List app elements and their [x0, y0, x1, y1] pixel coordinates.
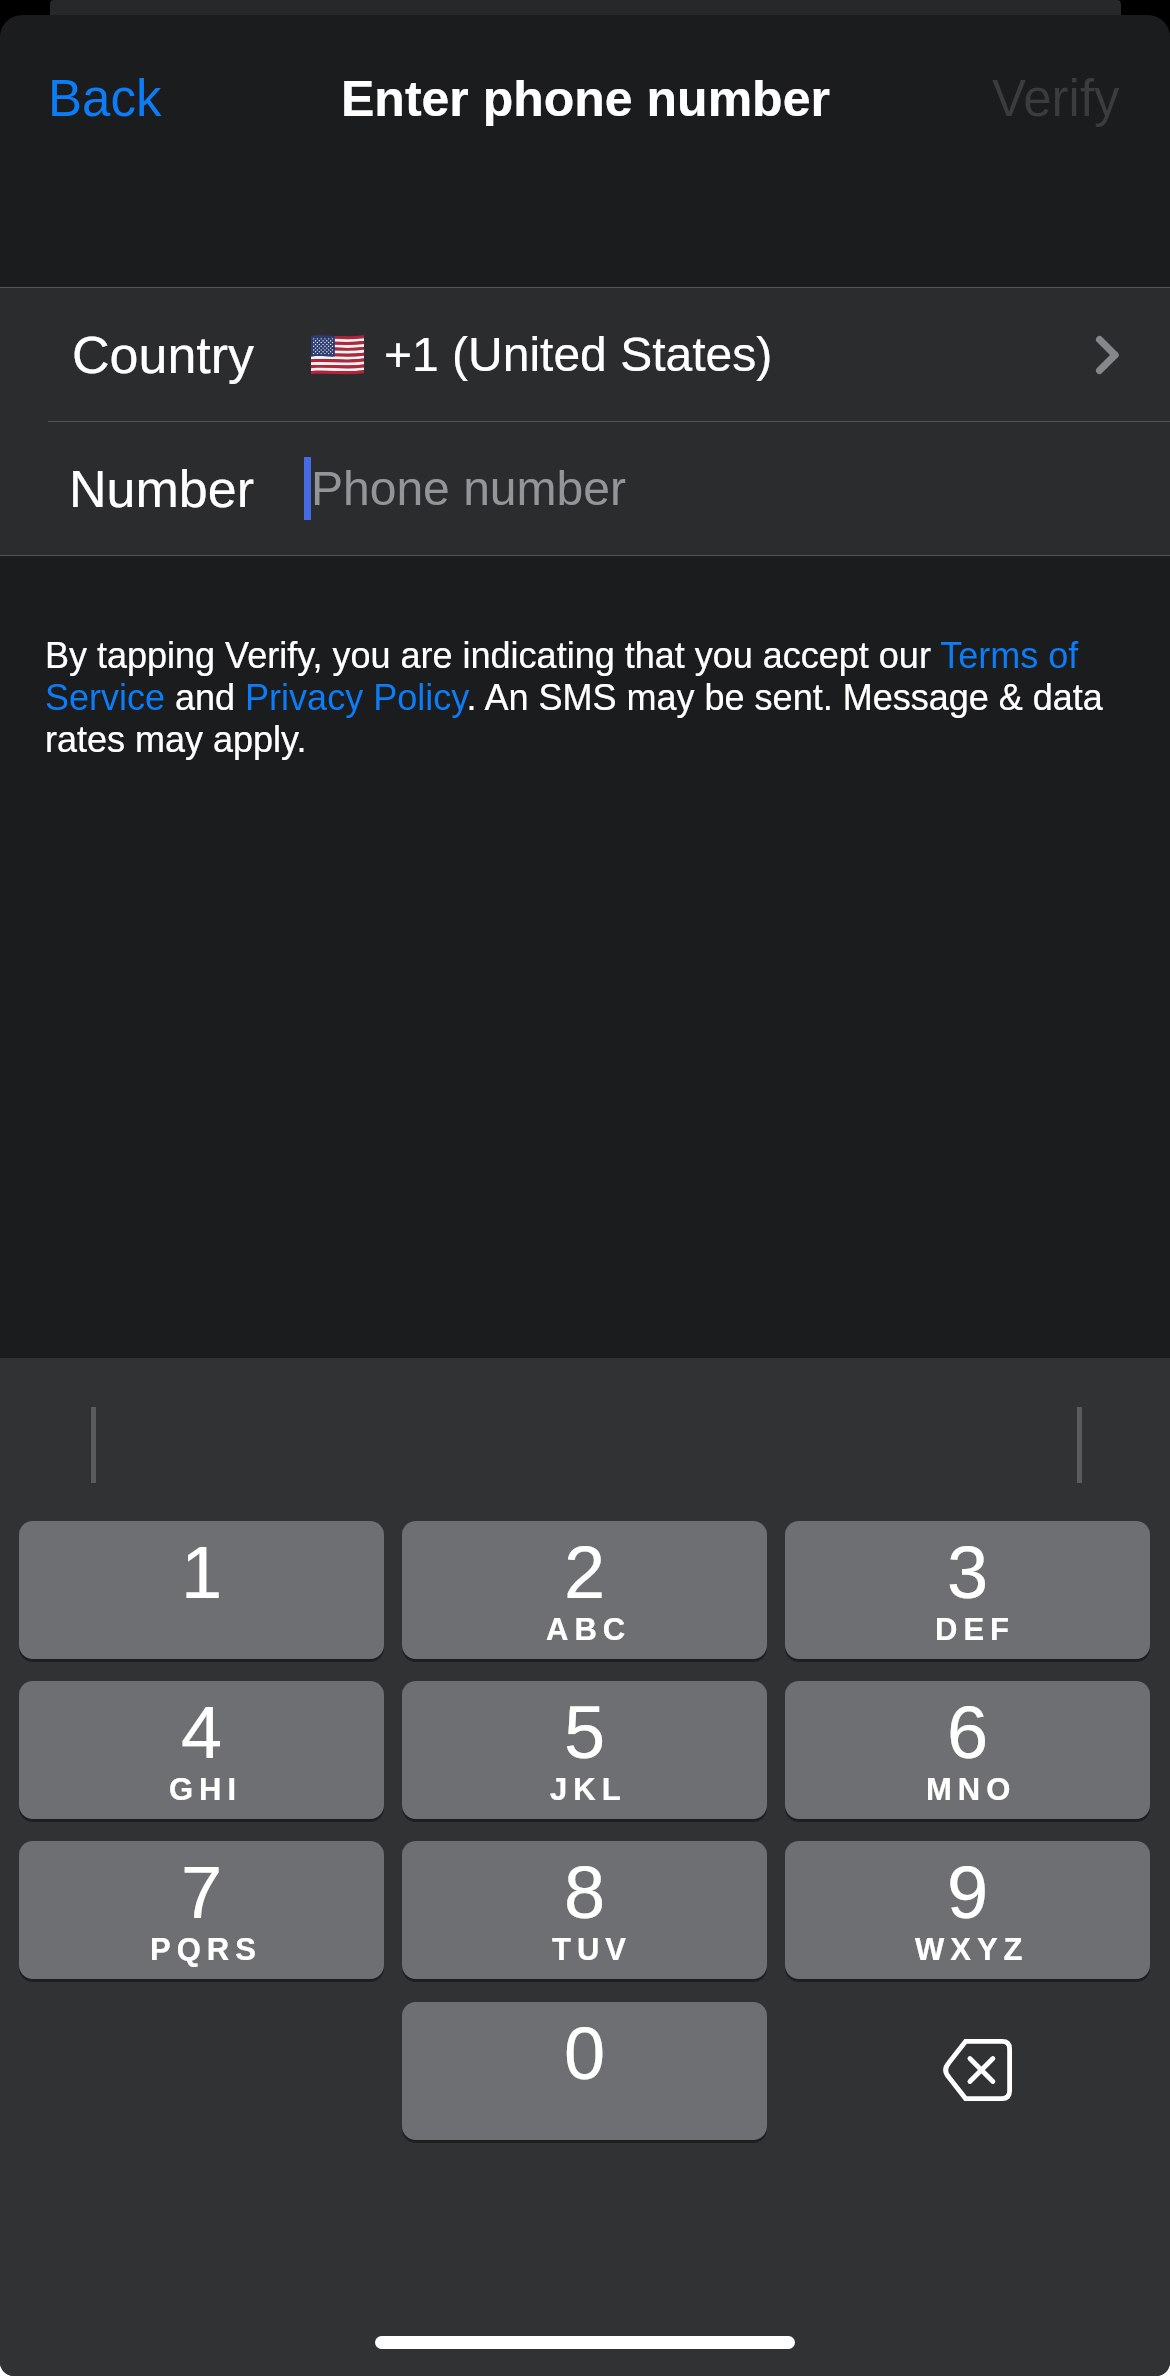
button[interactable]: 1 [19, 1521, 384, 1659]
button[interactable]: 3 [785, 1521, 1150, 1659]
staticText: TUV [549, 1932, 629, 1967]
staticText: MNO [926, 1772, 1017, 1807]
staticText: +1 (United States) [384, 328, 773, 382]
staticText: 5 [564, 1691, 606, 1774]
button[interactable]: 7 [19, 1841, 384, 1979]
staticText: Country [72, 326, 255, 384]
staticText: By tapping Verify, you are indicating th… [45, 635, 1139, 759]
staticText: Number [69, 460, 254, 518]
staticText: 6 [947, 1691, 989, 1774]
button[interactable]: 5 [402, 1681, 767, 1819]
staticText: PQRS [150, 1932, 262, 1967]
staticText: 8 [564, 1851, 606, 1934]
button[interactable]: 4 [19, 1681, 384, 1819]
staticText: WXYZ [915, 1932, 1029, 1967]
staticText: Verify [992, 70, 1120, 127]
staticText: JKL [550, 1772, 627, 1807]
button[interactable]: Backspace [785, 2002, 1150, 2140]
staticText: DEF [932, 1612, 1012, 1647]
button[interactable]: 2 [402, 1521, 767, 1659]
staticText: Enter phone number [341, 71, 830, 127]
staticText: 3 [947, 1531, 989, 1614]
staticText: 9 [947, 1851, 989, 1934]
button[interactable]: 9 [785, 1841, 1150, 1979]
staticText: 7 [181, 1851, 223, 1934]
button[interactable]: Verify [964, 56, 1148, 141]
staticText: 1 [181, 1531, 223, 1614]
button[interactable]: 0 [402, 2002, 767, 2140]
button[interactable]: 8 [402, 1841, 767, 1979]
staticText: 2 [564, 1531, 606, 1614]
button[interactable]: Back [20, 56, 190, 141]
staticText: 4 [181, 1691, 223, 1774]
staticText: Back [48, 70, 162, 127]
button[interactable]: Number [0, 422, 1170, 555]
button[interactable]: Country [0, 288, 1170, 421]
staticText: GHI [169, 1772, 243, 1807]
button[interactable]: 6 [785, 1681, 1150, 1819]
staticText: ABC [546, 1612, 632, 1647]
staticText: 0 [564, 2012, 606, 2095]
staticText: Phone number [311, 462, 626, 516]
